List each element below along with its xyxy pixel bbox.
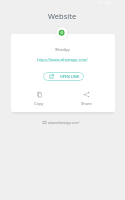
button[interactable]: Share [78, 91, 94, 106]
staticText: WhatsApp [0, 48, 125, 52]
button[interactable]: www.whatsapp.com/ [43, 119, 80, 126]
button[interactable]: OPEN LINK [43, 72, 84, 81]
staticText: www.whatsapp.com/ [48, 121, 80, 125]
staticText: Website [48, 11, 77, 21]
staticText: Share [81, 101, 92, 106]
staticText: Copy [34, 101, 44, 106]
staticText: OPEN LINK [60, 74, 79, 79]
button[interactable]: https://www.whatsapp.com/ [0, 57, 125, 62]
button[interactable]: Copy [31, 91, 47, 106]
